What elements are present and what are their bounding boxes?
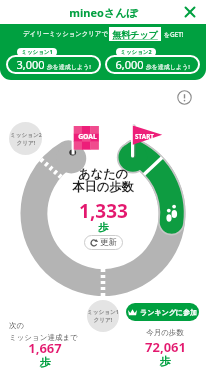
- staticText: 1,667: [28, 339, 62, 357]
- staticText: をGET!: [163, 30, 184, 39]
- staticText: START: [135, 132, 154, 141]
- staticText: ミッション1 クリア!: [87, 308, 119, 324]
- staticText: 次の: [9, 321, 25, 330]
- button[interactable]: ランキングに参加: [126, 303, 199, 321]
- staticText: 歩を達成しよう!: [45, 63, 91, 71]
- staticText: 更新: [100, 237, 117, 248]
- staticText: 6,000: [115, 57, 144, 72]
- staticText: ランキングに参加: [140, 308, 197, 317]
- staticText: あなたの 本日の歩数: [72, 166, 134, 195]
- staticText: 1,333: [79, 198, 128, 224]
- staticText: ミッション1: [21, 48, 53, 56]
- staticText: 歩: [40, 355, 51, 369]
- staticText: mineoさんぽ: [69, 5, 138, 20]
- staticText: デイリーミッションクリアで: [23, 30, 108, 38]
- staticText: 歩: [98, 221, 109, 234]
- button[interactable]: Close: [182, 4, 198, 20]
- staticText: ミッション2 クリア!: [10, 131, 42, 147]
- staticText: ミッション達成まで: [9, 333, 78, 342]
- button[interactable]: 6,000: [105, 55, 200, 74]
- button[interactable]: Information: [177, 90, 192, 105]
- button[interactable]: 3,000: [6, 55, 101, 74]
- staticText: GOAL: [78, 132, 97, 141]
- staticText: 歩: [160, 354, 171, 368]
- staticText: 72,061: [145, 338, 186, 356]
- staticText: 今月の歩数: [146, 328, 184, 337]
- button[interactable]: 更新: [84, 235, 123, 250]
- staticText: 3,000: [16, 57, 45, 72]
- staticText: 無料チップ: [112, 29, 158, 40]
- staticText: 歩を達成しよう!: [144, 63, 190, 71]
- staticText: ミッション2: [120, 48, 152, 56]
